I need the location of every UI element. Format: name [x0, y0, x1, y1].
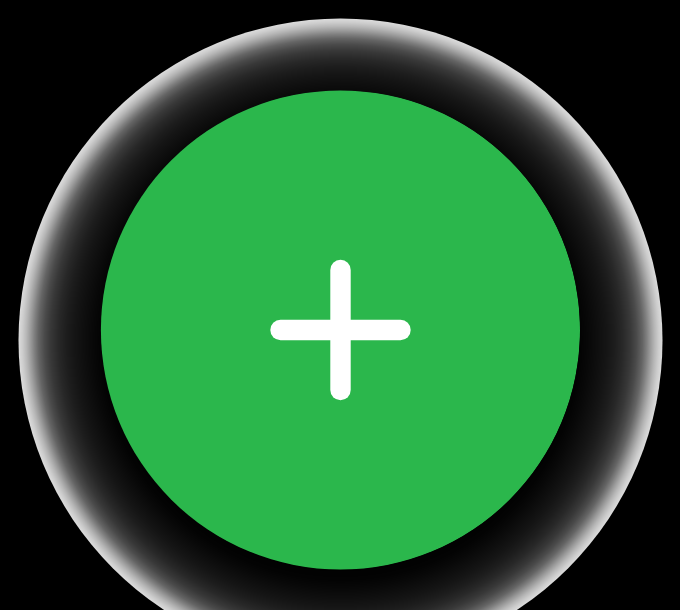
button[interactable]: Add [100, 90, 580, 570]
